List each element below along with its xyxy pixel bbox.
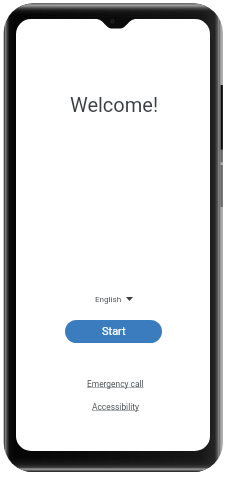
staticText: Welcome! [17, 93, 210, 116]
staticText: Accessibility [92, 402, 139, 412]
button[interactable]: Accessibility [88, 399, 143, 415]
staticText: Emergency call [87, 379, 144, 389]
button[interactable]: Start [65, 320, 162, 343]
button[interactable]: Emergency call [83, 376, 148, 392]
button[interactable]: English [93, 291, 135, 306]
staticText: Start [102, 325, 126, 338]
staticText: English [95, 294, 122, 303]
